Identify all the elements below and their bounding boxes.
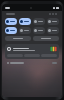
button[interactable]: Quick setting toggle <box>5 18 17 25</box>
button[interactable]: Quick setting toggle <box>33 18 45 25</box>
button[interactable]: Control <box>33 36 59 41</box>
button[interactable]: Quick setting toggle <box>47 18 59 25</box>
button[interactable] <box>5 61 59 65</box>
button[interactable]: Quick setting toggle <box>19 27 31 34</box>
button[interactable]: Notification action <box>5 44 59 59</box>
button[interactable]: Quick setting toggle <box>5 27 17 34</box>
button[interactable]: Quick setting toggle <box>33 27 45 34</box>
button[interactable]: Quick setting toggle <box>47 27 59 34</box>
button[interactable]: Quick setting toggle <box>19 18 31 25</box>
button[interactable]: Control <box>5 36 31 41</box>
